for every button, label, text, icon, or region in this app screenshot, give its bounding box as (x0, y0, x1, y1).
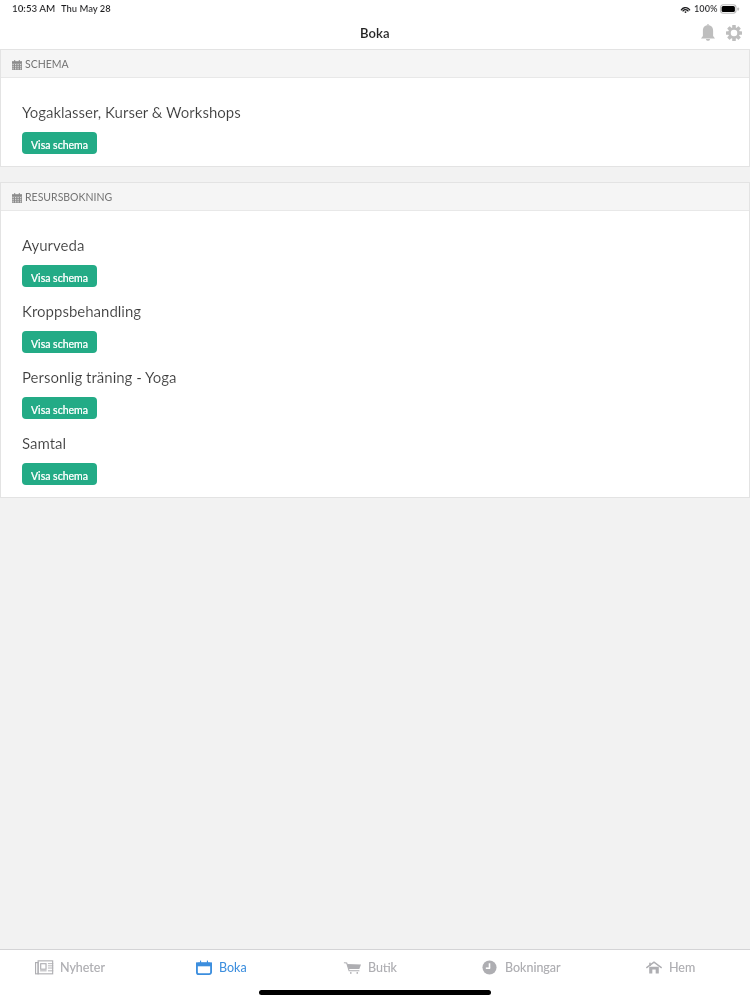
button[interactable]: Butik (300, 950, 450, 985)
button[interactable]: Notifications (695, 20, 721, 46)
staticText: Visa schema (31, 404, 88, 417)
staticText: 100% (694, 3, 718, 14)
staticText: Visa schema (31, 470, 88, 483)
button[interactable]: Visa schema (22, 132, 97, 154)
staticText: Samtal (22, 434, 67, 452)
staticText: Bokningar (505, 960, 561, 975)
staticText: 10:53 AM (12, 2, 56, 14)
button[interactable]: Visa schema (22, 397, 97, 419)
staticText: Butik (368, 960, 397, 975)
button[interactable]: Visa schema (22, 265, 97, 287)
staticText: Ayurveda (22, 236, 85, 254)
staticText: Visa schema (31, 272, 88, 285)
button[interactable]: Bokningar (450, 950, 600, 985)
button[interactable]: Visa schema (22, 331, 97, 353)
staticText: Personlig träning - Yoga (22, 368, 177, 386)
staticText: Hem (669, 960, 696, 975)
button[interactable]: Hem (600, 950, 750, 985)
staticText: Yogaklasser, Kurser & Workshops (22, 103, 241, 121)
staticText: RESURSBOKNING (25, 191, 113, 204)
staticText: Thu May 28 (61, 3, 111, 14)
staticText: Visa schema (31, 139, 88, 152)
button[interactable]: Nyheter (0, 950, 150, 985)
button[interactable]: Boka (150, 950, 300, 985)
button[interactable]: Visa schema (22, 463, 97, 485)
staticText: Boka (219, 960, 247, 975)
staticText: Boka (360, 25, 390, 41)
staticText: Nyheter (60, 960, 105, 975)
staticText: Kroppsbehandling (22, 302, 142, 320)
staticText: Visa schema (31, 338, 88, 351)
staticText: SCHEMA (25, 58, 69, 71)
button[interactable]: Settings (721, 20, 747, 46)
